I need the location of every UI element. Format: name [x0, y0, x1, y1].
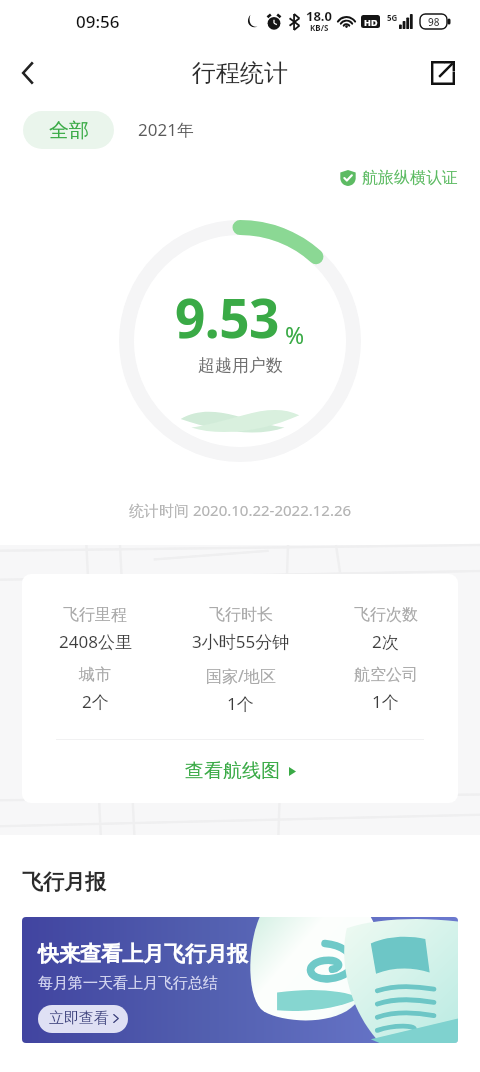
staticText: 2个: [82, 690, 109, 713]
staticText: 2021年: [138, 118, 194, 141]
staticText: %: [285, 319, 305, 350]
staticText: 18.0: [306, 7, 332, 25]
staticText: 全部: [49, 118, 89, 143]
staticText: 2408公里: [59, 630, 132, 653]
staticText: 5G: [387, 12, 398, 23]
staticText: 98: [428, 15, 440, 29]
button[interactable]: 全部: [23, 111, 114, 149]
staticText: 查看航线图: [185, 759, 280, 783]
staticText: 2次: [372, 630, 399, 653]
staticText: 超越用户数: [198, 355, 283, 376]
staticText: 飞行时长: [209, 605, 273, 625]
button[interactable]: 2021年: [114, 109, 208, 150]
staticText: 飞行里程: [63, 605, 127, 625]
staticText: 1个: [227, 692, 254, 715]
button[interactable]: 立即查看: [38, 1005, 128, 1033]
button[interactable]: Share: [426, 56, 460, 90]
staticText: 行程统计: [192, 58, 288, 88]
staticText: 立即查看: [49, 1009, 109, 1028]
button[interactable]: Back: [5, 50, 51, 96]
staticText: 09:56: [76, 10, 120, 33]
staticText: 城市: [79, 665, 111, 685]
staticText: KB/S: [310, 22, 329, 33]
staticText: 快来查看上月飞行月报: [38, 941, 248, 967]
staticText: 国家/地区: [206, 665, 276, 687]
staticText: 统计时间 2020.10.22-2022.12.26: [129, 500, 352, 520]
staticText: 飞行月报: [22, 869, 106, 895]
staticText: 3小时55分钟: [192, 630, 290, 653]
staticText: HD: [364, 16, 378, 28]
staticText: 航旅纵横认证: [362, 168, 458, 188]
staticText: 航空公司: [354, 665, 418, 685]
button[interactable]: 查看航线图: [22, 759, 458, 783]
staticText: 每月第一天看上月飞行总结: [38, 974, 218, 993]
staticText: 飞行次数: [354, 605, 418, 625]
button[interactable]: 快来查看上月飞行月报: [22, 917, 458, 1043]
staticText: 1个: [372, 690, 399, 713]
staticText: 9.53: [175, 281, 279, 353]
